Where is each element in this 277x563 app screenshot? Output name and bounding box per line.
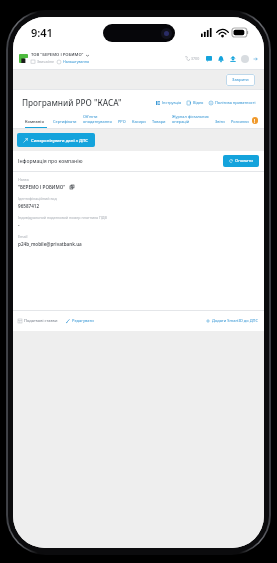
- staticText: Сертифікати: [53, 119, 77, 124]
- button[interactable]: РРО: [115, 119, 129, 128]
- button[interactable]: Товари: [149, 119, 169, 128]
- staticText: Назва: [18, 177, 29, 182]
- staticText: 96587412: [18, 203, 40, 209]
- button[interactable]: Notifications: [217, 55, 225, 63]
- staticText: Email: [18, 234, 28, 239]
- staticText: Компанія: [25, 119, 44, 124]
- button[interactable]: Додати SmartID до ДПС: [206, 316, 259, 325]
- staticText: -: [18, 222, 20, 228]
- button[interactable]: Help: [252, 117, 258, 128]
- staticText: Політика приватності: [215, 100, 256, 105]
- staticText: Програмний РРО "КАСА": [22, 97, 122, 108]
- button[interactable]: Синхронізувати дані з ДПС: [17, 133, 95, 147]
- button[interactable]: Upload: [229, 55, 237, 63]
- button[interactable]: Інструкція: [156, 98, 182, 107]
- staticText: Закрити: [232, 77, 249, 83]
- staticText: Налаштування: [63, 59, 90, 64]
- staticText: операцій: [172, 119, 190, 124]
- staticText: Податкові ставки: [24, 318, 58, 323]
- staticText: ТОВ "БЕРЕМО І РОБИМО": [31, 52, 84, 58]
- staticText: Додати SmartID до ДПС: [212, 318, 259, 323]
- button[interactable]: Messages: [205, 55, 213, 63]
- button[interactable]: Журнал фіскальних: [169, 114, 212, 128]
- button[interactable]: Касири: [129, 119, 149, 128]
- button[interactable]: Об'єкти: [80, 114, 115, 128]
- button[interactable]: Відео: [187, 98, 204, 107]
- staticText: Журнал фіскальних: [172, 114, 209, 119]
- staticText: Відео: [193, 100, 204, 105]
- button[interactable]: Редагувати: [66, 316, 94, 325]
- staticText: p24b_mobile@privatbank.ua: [18, 241, 82, 247]
- staticText: Розсилки: [231, 119, 249, 124]
- staticText: 9:41: [31, 25, 53, 40]
- button[interactable]: Закрити: [226, 74, 255, 86]
- staticText: Ідентифікаційний код: [18, 196, 57, 201]
- staticText: !: [254, 118, 256, 124]
- button[interactable]: Copy: [69, 184, 75, 190]
- staticText: Інформація про компанію: [18, 158, 83, 165]
- staticText: Оновити: [235, 158, 253, 164]
- staticText: Синхронізувати дані з ДПС: [31, 137, 89, 143]
- staticText: РРО: [118, 119, 126, 124]
- button[interactable]: Сертифікати: [50, 119, 80, 128]
- staticText: Інструкція: [162, 100, 182, 105]
- staticText: Звичайне: [37, 59, 54, 64]
- button[interactable]: Оновити: [223, 155, 259, 167]
- staticText: Індивідуальний податковий номер платника…: [18, 215, 107, 220]
- staticText: "БЕРЕМО І РОБИМО": [18, 184, 66, 190]
- staticText: 3700: [191, 56, 200, 61]
- staticText: Касири: [132, 119, 146, 124]
- button[interactable]: Політика приватності: [209, 98, 256, 107]
- staticText: Звіти: [215, 119, 225, 124]
- staticText: Редагувати: [72, 318, 94, 323]
- button[interactable]: Call support: [184, 54, 201, 63]
- button[interactable]: Розсилки: [228, 119, 252, 128]
- button[interactable]: Податкові ставки: [18, 316, 58, 325]
- button[interactable]: Компанія: [22, 119, 50, 128]
- staticText: оподаткування: [83, 119, 112, 124]
- button[interactable]: ТОВ "БЕРЕМО І РОБИМО": [18, 51, 91, 65]
- staticText: Об'єкти: [83, 114, 98, 119]
- button[interactable]: Profile: [241, 55, 249, 63]
- button[interactable]: Log out: [252, 56, 259, 62]
- button[interactable]: Звіти: [212, 119, 228, 128]
- staticText: Товари: [152, 119, 166, 124]
